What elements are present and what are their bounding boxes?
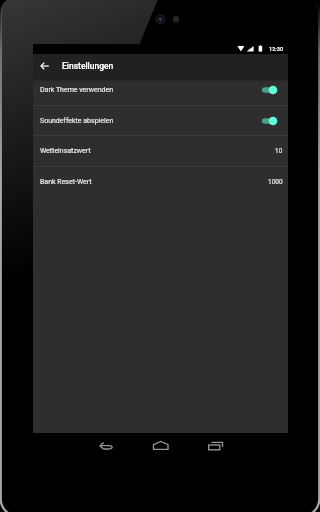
button[interactable]: Soundeffekte abspielen xyxy=(33,106,288,135)
button[interactable]: Bank Reset-Wert xyxy=(33,167,288,197)
staticText: 1000 xyxy=(268,178,283,186)
button[interactable]: Dark Theme verwenden xyxy=(33,75,288,105)
staticText: 10 xyxy=(275,147,283,155)
button[interactable]: Startbildschirm xyxy=(142,433,178,459)
button[interactable]: Ein xyxy=(262,85,277,95)
button[interactable]: Zurück xyxy=(88,433,124,459)
button[interactable]: Zuletzt verwendete Apps xyxy=(197,433,233,459)
staticText: Einstellungen xyxy=(62,61,114,71)
staticText: 12:30 xyxy=(269,46,284,53)
button[interactable]: Zurück xyxy=(33,54,55,78)
staticText: Soundeffekte abspielen xyxy=(40,117,268,125)
staticText: Dark Theme verwenden xyxy=(40,86,268,94)
staticText: Wetteinsatzwert xyxy=(40,147,275,155)
button[interactable]: Wetteinsatzwert xyxy=(33,136,288,166)
staticText: Bank Reset-Wert xyxy=(40,178,268,186)
button[interactable]: Ein xyxy=(262,116,277,126)
